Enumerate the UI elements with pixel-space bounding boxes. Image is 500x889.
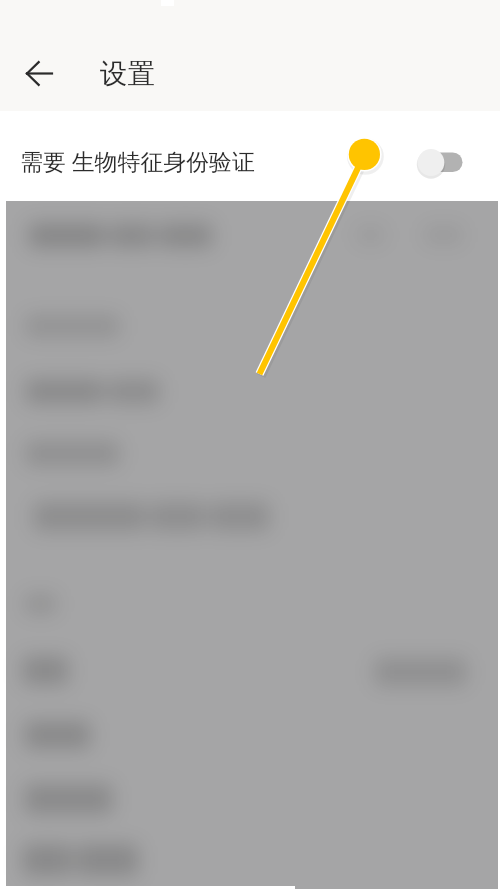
button[interactable]: Back <box>11 45 67 101</box>
staticText: 设置 <box>100 57 155 92</box>
button[interactable]: 需要 生物特征身份验证 <box>0 111 500 201</box>
button[interactable]: Require biometric authentication toggle,… <box>410 142 470 186</box>
staticText: 需要 生物特征身份验证 <box>20 146 255 177</box>
